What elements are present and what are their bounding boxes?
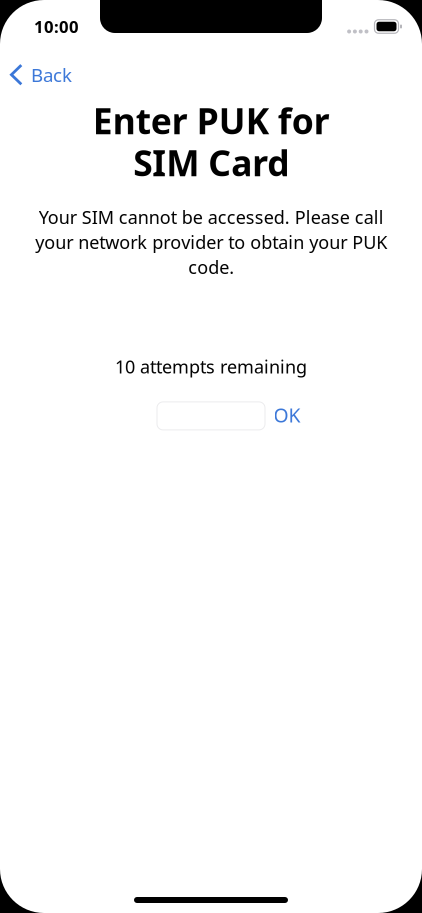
button[interactable]: PUK code <box>157 402 265 430</box>
staticText: Back <box>31 62 72 87</box>
staticText: Your SIM cannot be accessed. Please call… <box>35 205 387 279</box>
staticText: 10:00 <box>34 15 79 38</box>
button[interactable]: Back <box>0 56 82 93</box>
staticText: 10 attempts remaining <box>115 354 307 379</box>
staticText: Enter PUK for SIM Card <box>92 96 329 187</box>
staticText: OK <box>273 402 300 428</box>
button[interactable]: OK <box>265 396 308 434</box>
